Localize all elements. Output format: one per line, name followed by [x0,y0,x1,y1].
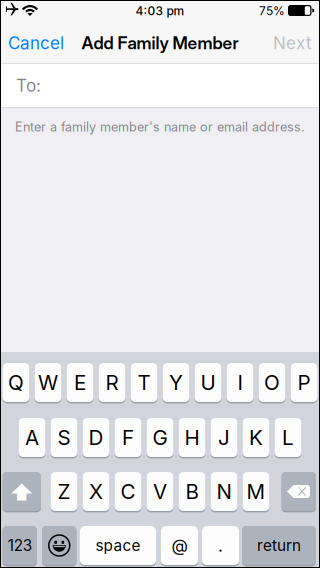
button[interactable]: M [0,0,320,568]
button[interactable]: K [0,0,320,568]
staticText: L [282,425,294,450]
staticText: U [200,370,215,395]
staticText: return [257,536,301,555]
button[interactable]: Y [0,0,320,568]
button[interactable]: O [0,0,320,568]
button[interactable]: E [0,0,320,568]
button[interactable]: W [0,0,320,568]
button[interactable]: Shift [0,0,320,568]
button[interactable]: S [0,0,320,568]
staticText: I [237,370,242,395]
staticText: space [95,536,140,555]
staticText: V [153,479,167,504]
staticText: R [105,370,118,395]
button[interactable]: V [0,0,320,568]
button[interactable]: L [0,0,320,568]
button[interactable]: Z [0,0,320,568]
staticText: @ [171,535,187,556]
button[interactable]: @ [0,0,320,568]
button[interactable]: T [0,0,320,568]
button[interactable]: R [0,0,320,568]
button[interactable]: Next [0,0,320,568]
button[interactable]: X [0,0,320,568]
staticText: H [184,425,199,450]
button[interactable]: D [0,0,320,568]
staticText: D [88,425,103,450]
button[interactable]: F [0,0,320,568]
staticText: N [216,479,231,504]
button[interactable]: return [0,0,320,568]
button[interactable]: I [0,0,320,568]
staticText: C [120,479,135,504]
button[interactable]: Q [0,0,320,568]
staticText: 123 [8,536,32,555]
staticText: X [89,479,103,504]
button[interactable]: Delete [0,0,320,568]
button[interactable]: U [0,0,320,568]
button[interactable]: H [0,0,320,568]
staticText: F [122,425,134,450]
staticText: J [218,425,230,450]
button[interactable]: N [0,0,320,568]
button[interactable]: A [0,0,320,568]
staticText: G [152,425,167,450]
staticText: M [246,479,265,504]
staticText: O [264,370,280,395]
staticText: E [74,370,86,395]
button[interactable]: Emoji [0,0,320,568]
staticText: P [297,370,310,395]
button[interactable]: B [0,0,320,568]
staticText: Q [8,370,24,395]
button[interactable]: space [0,0,320,568]
staticText: Cancel [8,33,64,53]
button[interactable]: Cancel [0,0,320,568]
staticText: W [38,370,58,395]
staticText: To: [16,75,41,96]
staticText: K [249,425,263,450]
button[interactable]: 123 [0,0,320,568]
button[interactable]: G [0,0,320,568]
button[interactable]: C [0,0,320,568]
staticText: 4:03 pm [135,4,184,18]
staticText: Next [273,33,312,53]
button[interactable]: . [0,0,320,568]
staticText: . [218,535,223,556]
button[interactable]: P [0,0,320,568]
staticText: Enter a family member's name or email ad… [15,119,305,135]
staticText: 75% [259,4,285,18]
button[interactable]: To: [0,0,320,568]
staticText: Z [57,479,70,504]
staticText: Y [169,370,183,395]
staticText: B [185,479,198,504]
staticText: Add Family Member [81,32,238,53]
staticText: A [25,425,39,450]
staticText: S [57,425,70,450]
button[interactable]: J [0,0,320,568]
staticText: T [137,370,150,395]
